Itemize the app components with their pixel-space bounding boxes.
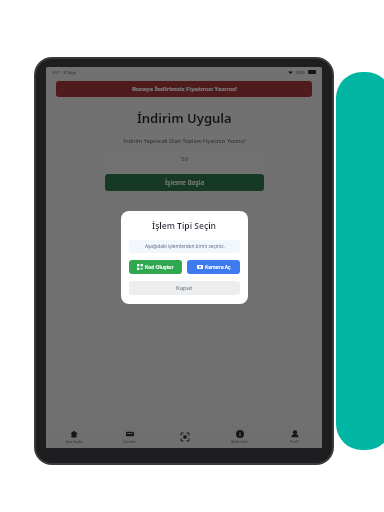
- button[interactable]: Buraya İndirimsiz Fiyatınızı Yazınız!: [56, 81, 312, 97]
- staticText: Profil: [290, 439, 299, 444]
- staticText: Kod Oluştur: [145, 264, 174, 271]
- staticText: Ana Sayfa: [66, 439, 83, 444]
- button[interactable]: Kapat: [129, 281, 240, 295]
- staticText: 50: [181, 155, 188, 163]
- button[interactable]: Kamera Aç: [187, 260, 240, 274]
- button[interactable]: Tara: [157, 426, 212, 448]
- button[interactable]: Bildirimler: [212, 426, 267, 448]
- button[interactable]: Ana Sayfa: [46, 426, 102, 448]
- button[interactable]: İşleme Başla: [105, 174, 264, 191]
- staticText: 9:57: [52, 70, 60, 75]
- staticText: İşlemler: [123, 439, 137, 444]
- button[interactable]: İşlemler: [102, 426, 157, 448]
- staticText: İndirim Yapılacak Olan Toplam Fiyatınızı…: [123, 137, 246, 144]
- staticText: Buraya İndirimsiz Fiyatınızı Yazınız!: [132, 85, 237, 93]
- staticText: Bildirimler: [231, 439, 249, 444]
- button[interactable]: Kod Oluştur: [129, 260, 182, 274]
- staticText: Kapat: [176, 284, 193, 292]
- staticText: İşlem Tipi Seçin: [152, 220, 217, 232]
- staticText: İşleme Başla: [165, 178, 205, 187]
- staticText: İndirim Uygula: [137, 109, 232, 127]
- staticText: Kamera Aç: [205, 264, 231, 271]
- staticText: 30 Ağu: [63, 70, 77, 75]
- staticText: Aşağıdaki işlemlerden birini seçiniz.: [145, 243, 225, 250]
- staticText: 100%: [295, 70, 306, 75]
- button[interactable]: Profil: [267, 426, 322, 448]
